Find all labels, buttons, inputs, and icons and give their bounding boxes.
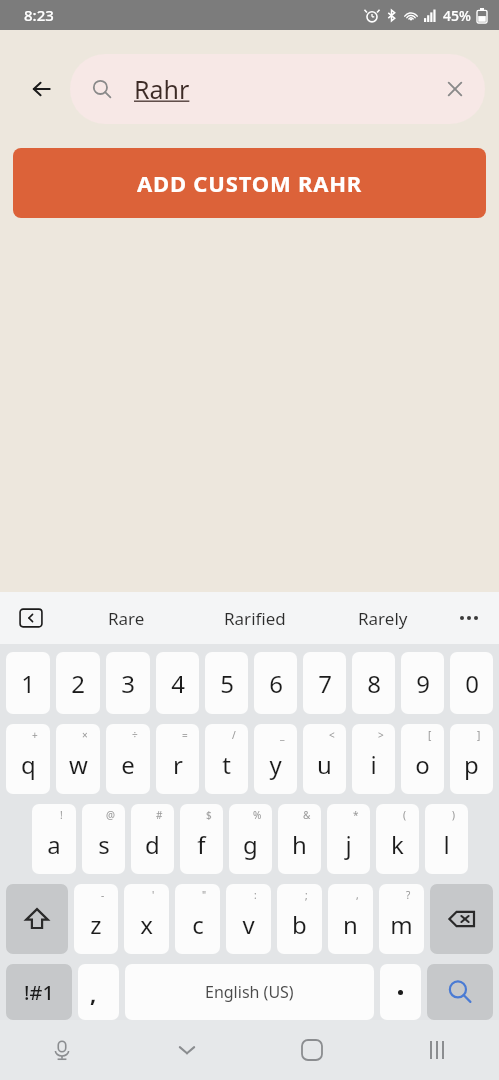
button[interactable]: 1 — [6, 652, 50, 714]
staticText: + — [32, 728, 38, 742]
button[interactable]: ' — [124, 884, 169, 954]
staticText: p — [464, 748, 479, 781]
staticText: @ — [106, 808, 115, 822]
staticText: q — [21, 748, 36, 781]
staticText: ( — [403, 808, 406, 822]
staticText: x — [140, 908, 153, 941]
button[interactable]: + — [6, 724, 50, 794]
button[interactable]: @ — [82, 804, 125, 874]
staticText: Rarified — [224, 607, 286, 630]
button[interactable]: # — [131, 804, 174, 874]
staticText: , — [90, 978, 97, 1008]
button[interactable]: > — [352, 724, 395, 794]
staticText: !#1 — [24, 979, 54, 1006]
button[interactable]: Back — [18, 65, 66, 113]
staticText: l — [443, 828, 450, 861]
button[interactable] — [380, 964, 421, 1020]
button[interactable]: & — [278, 804, 321, 874]
button[interactable]: 0 — [450, 652, 493, 714]
staticText: o — [415, 748, 430, 781]
button[interactable]: 9 — [401, 652, 444, 714]
button[interactable]: Recent apps — [374, 1020, 499, 1080]
staticText: / — [232, 728, 236, 742]
button[interactable]: $ — [180, 804, 223, 874]
button[interactable]: / — [205, 724, 248, 794]
button[interactable]: Rare — [62, 592, 191, 644]
staticText: v — [242, 908, 255, 941]
staticText: # — [156, 808, 163, 822]
button[interactable]: Clear search — [433, 67, 477, 111]
button[interactable]: 2 — [56, 652, 100, 714]
button[interactable]: 6 — [254, 652, 297, 714]
button[interactable]: ] — [450, 724, 493, 794]
staticText: ] — [477, 728, 481, 742]
button[interactable]: * — [327, 804, 370, 874]
staticText: e — [121, 748, 135, 781]
button[interactable]: < — [303, 724, 346, 794]
staticText: t — [222, 748, 231, 781]
button[interactable]: 3 — [106, 652, 150, 714]
button[interactable]: Search — [427, 964, 493, 1020]
staticText: _ — [280, 728, 285, 742]
staticText: 1 — [21, 667, 35, 700]
button[interactable]: % — [229, 804, 272, 874]
button[interactable]: ADD CUSTOM RAHR — [13, 148, 486, 218]
button[interactable]: ) — [425, 804, 468, 874]
button[interactable]: " — [175, 884, 220, 954]
staticText: ? — [406, 888, 411, 902]
button[interactable]: Voice input — [0, 1020, 124, 1080]
staticText: < — [329, 728, 335, 742]
staticText: k — [391, 828, 404, 861]
button[interactable]: - — [74, 884, 118, 954]
button[interactable]: English (US) — [125, 964, 374, 1020]
staticText: n — [343, 908, 358, 941]
staticText: a — [47, 828, 61, 861]
button[interactable]: , — [328, 884, 373, 954]
staticText: 8 — [367, 667, 381, 700]
staticText: > — [378, 728, 384, 742]
staticText: 3 — [121, 667, 135, 700]
staticText: ADD CUSTOM RAHR — [137, 168, 363, 198]
button[interactable]: More options — [449, 598, 489, 638]
staticText: : — [254, 888, 257, 902]
button[interactable]: [ — [401, 724, 444, 794]
button[interactable]: ? — [379, 884, 424, 954]
button[interactable]: ! — [32, 804, 76, 874]
staticText: h — [292, 828, 307, 861]
button[interactable]: Expand toolbar — [14, 601, 48, 635]
staticText: g — [243, 828, 258, 861]
staticText: 8:23 — [24, 5, 54, 25]
staticText: * — [353, 808, 359, 822]
button[interactable]: Hide keyboard — [124, 1020, 249, 1080]
button[interactable]: , — [78, 964, 119, 1020]
button[interactable]: Shift — [6, 884, 68, 954]
button[interactable]: 7 — [303, 652, 346, 714]
button[interactable]: Rarely — [319, 592, 447, 644]
staticText: ! — [60, 808, 63, 822]
staticText: = — [182, 728, 188, 742]
staticText: 2 — [71, 667, 85, 700]
staticText: c — [192, 908, 204, 941]
staticText: s — [98, 828, 110, 861]
button[interactable]: 8 — [352, 652, 395, 714]
staticText: & — [303, 808, 311, 822]
staticText: ) — [452, 808, 455, 822]
button[interactable]: Rarified — [191, 592, 319, 644]
button[interactable]: Rahr — [70, 54, 485, 124]
button[interactable]: 5 — [205, 652, 248, 714]
button[interactable]: ÷ — [106, 724, 150, 794]
button[interactable]: Home — [249, 1020, 374, 1080]
button[interactable]: _ — [254, 724, 297, 794]
button[interactable]: ( — [376, 804, 419, 874]
button[interactable]: ; — [277, 884, 322, 954]
button[interactable]: : — [226, 884, 271, 954]
button[interactable]: !#1 — [6, 964, 72, 1020]
staticText: 0 — [465, 667, 479, 700]
staticText: $ — [206, 808, 212, 822]
button[interactable]: = — [156, 724, 199, 794]
button[interactable]: 4 — [156, 652, 199, 714]
button[interactable]: × — [56, 724, 100, 794]
staticText: - — [101, 888, 105, 902]
button[interactable]: Backspace — [430, 884, 493, 954]
staticText: Rare — [108, 607, 145, 630]
